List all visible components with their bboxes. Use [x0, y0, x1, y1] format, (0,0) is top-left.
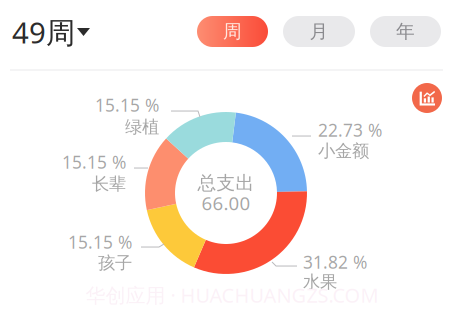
staticText: 22.73 % [318, 118, 382, 141]
staticText: 66.00 [201, 191, 250, 215]
staticText: 15.15 % [68, 230, 132, 253]
staticText: 华创应用 · HUACHUANGZS.COM [85, 282, 378, 308]
staticText: 15.15 % [62, 150, 126, 173]
button[interactable]: 49周 [12, 15, 90, 49]
staticText: 15.15 % [95, 93, 159, 116]
staticText: 绿植 [125, 116, 159, 138]
button[interactable]: 年 [370, 16, 441, 47]
staticText: 小金额 [318, 140, 369, 162]
staticText: 49周 [12, 12, 75, 51]
staticText: 总支出 [197, 171, 254, 194]
staticText: 年 [396, 20, 415, 43]
button[interactable]: Chart [412, 83, 442, 113]
staticText: 孩子 [98, 252, 132, 274]
staticText: 周 [223, 20, 242, 43]
staticText: 水果 [303, 271, 337, 293]
staticText: 月 [309, 20, 328, 43]
staticText: 31.82 % [303, 250, 367, 273]
staticText: 长辈 [92, 173, 126, 195]
button[interactable]: 周 [197, 16, 268, 47]
button[interactable]: 月 [283, 16, 355, 47]
